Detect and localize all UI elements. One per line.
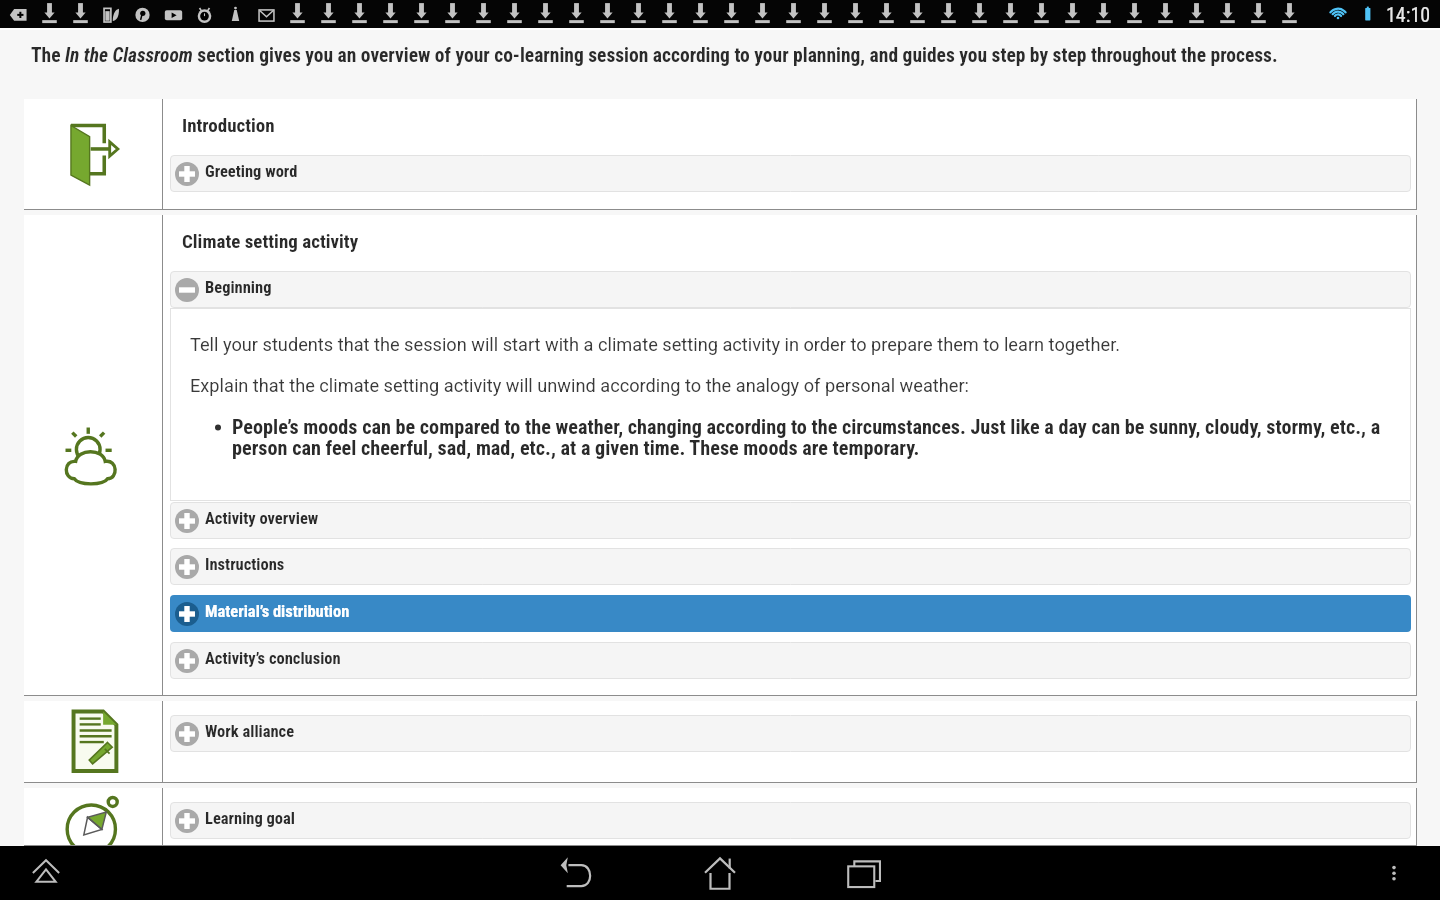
staticText: 14:10: [1386, 3, 1431, 26]
staticText: People’s moods can be compared to the we…: [232, 415, 1405, 460]
button[interactable]: Work alliance: [170, 715, 1411, 752]
button[interactable]: Beginning: [170, 271, 1411, 308]
button[interactable]: Activity overview: [170, 502, 1411, 539]
staticText: The In the Classroom section gives you a…: [31, 44, 1440, 67]
staticText: Explain that the climate setting activit…: [190, 375, 969, 396]
staticText: Tell your students that the session will…: [190, 334, 1121, 355]
button[interactable]: Activity’s conclusion: [170, 642, 1411, 679]
staticText: Work alliance: [205, 722, 295, 741]
staticText: Activity’s conclusion: [205, 649, 341, 668]
button[interactable]: Section icon: [24, 99, 162, 210]
staticText: Introduction: [182, 114, 275, 136]
staticText: Greeting word: [205, 162, 298, 181]
staticText: Material’s distribution: [205, 602, 350, 621]
staticText: Learning goal: [205, 809, 295, 828]
button[interactable]: Back: [552, 849, 600, 897]
button[interactable]: Up: [22, 849, 70, 897]
button[interactable]: Learning goal: [170, 802, 1411, 839]
button[interactable]: Home: [696, 849, 744, 897]
button[interactable]: Instructions: [170, 548, 1411, 585]
button[interactable]: Greeting word: [170, 155, 1411, 192]
button[interactable]: Section icon: [24, 215, 162, 696]
button[interactable]: Recent apps: [840, 849, 888, 897]
staticText: Climate setting activity: [182, 230, 359, 252]
button[interactable]: Material’s distribution: [170, 595, 1411, 632]
button[interactable]: Section icon: [24, 788, 162, 846]
button[interactable]: More options: [1370, 849, 1418, 897]
staticText: Instructions: [205, 555, 285, 574]
staticText: Beginning: [205, 278, 272, 297]
button[interactable]: Section icon: [24, 701, 162, 783]
staticText: Activity overview: [205, 509, 319, 528]
